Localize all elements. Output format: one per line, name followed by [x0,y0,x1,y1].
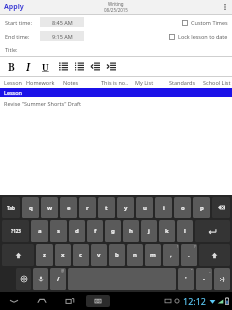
button[interactable]: w [41,197,58,218]
button[interactable]: Bulleted list [57,60,70,73]
button[interactable]: , [163,244,179,266]
button[interactable]: 9:15 AM [40,31,84,41]
button[interactable]: Screenshot [86,295,110,307]
button[interactable]: y [117,197,134,218]
button[interactable]: c [73,244,89,266]
button[interactable]: x [55,244,71,266]
button[interactable]: t [98,197,115,218]
button[interactable]: m [145,244,161,266]
button[interactable]: ' [178,268,194,290]
button[interactable]: . [181,244,197,266]
button[interactable]: globe [16,268,31,290]
staticText: k [165,227,169,235]
staticText: Tab [7,205,15,211]
staticText: r [86,204,89,212]
staticText: l [184,227,186,235]
button[interactable]: j [141,220,157,242]
staticText: Lock lesson to date [178,33,228,40]
button[interactable]: / [50,268,66,290]
button[interactable]: My List [134,77,155,88]
staticText: I [26,60,31,73]
button[interactable]: Bold [5,60,18,73]
staticText: Writing [108,1,124,7]
staticText: w [47,204,53,212]
button[interactable]: mic [33,268,48,290]
button[interactable]: Home [34,293,50,309]
staticText: o [181,204,185,212]
button[interactable]: Hide keyboard [6,293,22,309]
staticText: @ [61,268,65,273]
staticText: ' [185,275,187,283]
staticText: y [124,204,128,212]
button[interactable]: Recents [62,293,78,309]
button[interactable]: ?123 [2,220,29,242]
button[interactable]: More options [218,0,232,14]
button[interactable]: b [109,244,125,266]
button[interactable]: shift [2,244,34,266]
staticText: ?123 [11,228,21,234]
staticText: Homework [26,79,55,86]
button[interactable]: del [212,197,230,218]
staticText: Notes [63,79,79,86]
button[interactable]: Standards [168,77,197,88]
button[interactable]: v [91,244,107,266]
button[interactable]: z [36,244,53,266]
button[interactable]: shift [199,244,230,266]
button[interactable]: p [193,197,210,218]
button[interactable]: Underline [39,60,52,73]
button[interactable]: Custom Times [182,19,232,26]
button[interactable]: Homework [25,77,56,88]
staticText: _ [209,268,211,273]
staticText: f [94,227,97,235]
button[interactable]: Lock lesson to date [169,33,232,40]
staticText: Lesson [4,89,22,96]
button[interactable]: q [22,197,39,218]
staticText: q [29,204,33,212]
button[interactable]: enter [195,220,230,242]
staticText: z [43,251,46,259]
staticText: This is no.. [101,79,129,86]
staticText: Custom Times [191,19,228,26]
button[interactable]: k [159,220,175,242]
button[interactable]: Lesson [0,88,232,97]
staticText: d [75,227,79,235]
button[interactable]: Decrease indent [89,60,102,73]
staticText: u [143,204,147,212]
button[interactable]: Italic [22,60,35,73]
button[interactable]: Notes [62,77,80,88]
button[interactable]: s [50,220,67,242]
button[interactable]: a [31,220,48,242]
staticText: - [203,275,205,283]
button[interactable]: Apply [0,1,28,13]
button[interactable]: r [79,197,96,218]
button[interactable]: d [69,220,85,242]
button[interactable]: e [60,197,77,218]
staticText: j [148,227,150,235]
button[interactable]: g [105,220,121,242]
staticText: s [57,227,61,235]
button[interactable]: This is no.. [100,77,130,88]
button[interactable]: 8:45 AM [40,17,84,27]
staticText: " [191,268,193,273]
button[interactable]: u [136,197,153,218]
staticText: School List [203,79,231,86]
button[interactable]: i [155,197,172,218]
button[interactable]: Lesson [3,77,23,88]
button[interactable]: School List [202,77,232,88]
button[interactable]: :-) [214,268,230,290]
button[interactable]: n [127,244,143,266]
button[interactable]: Tab [2,197,20,218]
button[interactable]: h [123,220,139,242]
button[interactable]: - [196,268,212,290]
button[interactable]: Numbered list [73,60,86,73]
button[interactable]: l [177,220,193,242]
staticText: Standards [169,79,196,86]
staticText: ? [194,244,196,249]
button[interactable]: f [87,220,103,242]
staticText: / [57,275,60,283]
button[interactable]: Increase indent [105,60,118,73]
staticText: 12:12 [183,295,207,307]
staticText: g [111,227,115,235]
button[interactable]: o [174,197,191,218]
